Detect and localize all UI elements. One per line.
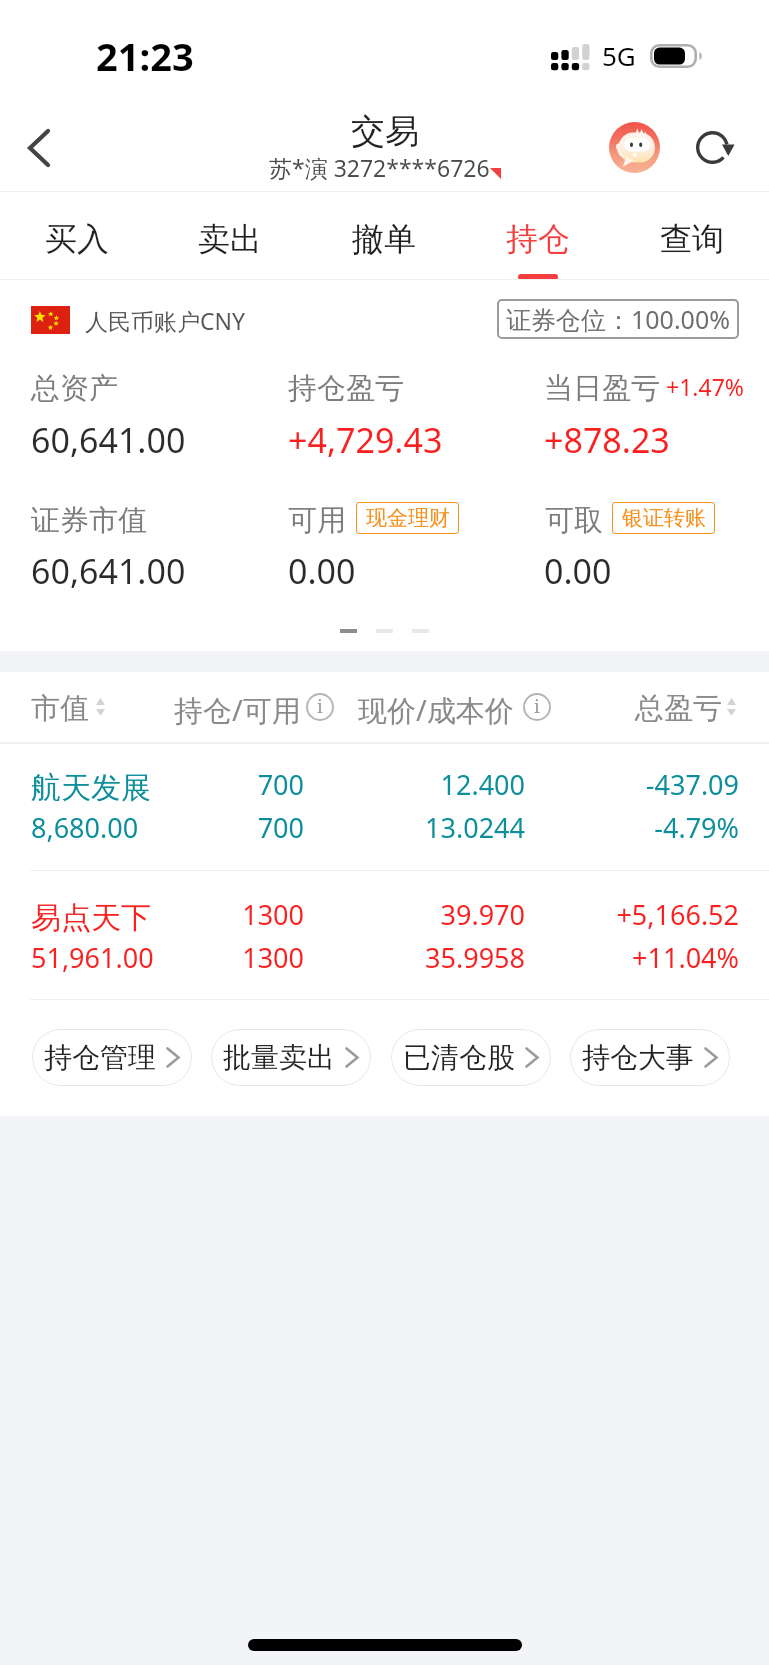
staticText: 51,961.00 <box>31 939 154 976</box>
staticText: 总盈亏 <box>635 690 722 727</box>
staticText: 市值 <box>31 690 89 727</box>
button[interactable]: 批量卖出 <box>211 1029 371 1086</box>
staticText: +878.23 <box>544 417 670 463</box>
button[interactable]: 查询 <box>615 192 769 280</box>
staticText: 700 <box>0 766 304 803</box>
staticText: 0.00 <box>288 548 356 594</box>
staticText: 8,680.00 <box>31 809 139 846</box>
staticText: 证券市值 <box>31 502 147 539</box>
staticText: 买入 <box>45 219 109 259</box>
staticText: i <box>317 694 323 719</box>
button[interactable]: 持仓管理 <box>32 1029 192 1086</box>
button[interactable]: 卖出 <box>153 192 307 280</box>
staticText: 交易 <box>351 110 419 153</box>
staticText: 13.0244 <box>0 809 525 846</box>
button[interactable]: 现金理财 <box>356 502 459 534</box>
button[interactable] <box>0 897 769 1019</box>
staticText: +1.47% <box>666 371 744 402</box>
staticText: 银证转账 <box>622 505 706 531</box>
staticText: 持仓管理 <box>44 1040 156 1075</box>
staticText: 现价/成本价 <box>358 690 514 730</box>
staticText: 700 <box>0 809 304 846</box>
staticText: 已清仓股 <box>403 1040 515 1075</box>
staticText: 可取 <box>545 502 603 539</box>
staticText: 总资产 <box>31 370 118 407</box>
staticText: 苏*演 3272****6726 <box>269 152 490 183</box>
button[interactable]: 已清仓股 <box>391 1029 551 1086</box>
staticText: 持仓盈亏 <box>288 370 404 407</box>
staticText: 60,641.00 <box>31 548 186 594</box>
staticText: 可用 <box>288 502 346 539</box>
staticText: 撤单 <box>352 219 416 259</box>
staticText: 航天发展 <box>31 769 151 807</box>
staticText: 0.00 <box>544 548 612 594</box>
button[interactable]: 撤单 <box>307 192 461 280</box>
button[interactable]: Refresh <box>684 118 740 174</box>
staticText: 1300 <box>0 939 304 976</box>
staticText: 21:23 <box>96 30 194 82</box>
staticText: 人民币账户CNY <box>85 305 246 336</box>
staticText: +5,166.52 <box>0 896 739 933</box>
staticText: 持仓大事 <box>582 1040 694 1075</box>
button[interactable]: 持仓大事 <box>570 1029 730 1086</box>
staticText: +11.04% <box>0 939 739 976</box>
staticText: +4,729.43 <box>288 417 443 463</box>
button[interactable]: Back <box>8 113 70 175</box>
button[interactable]: 证券仓位：100.00% <box>497 299 739 339</box>
staticText: 当日盈亏 <box>544 370 660 407</box>
staticText: 39.970 <box>0 896 525 933</box>
staticText: i <box>534 694 540 719</box>
button[interactable]: 银证转账 <box>612 502 715 534</box>
staticText: 1300 <box>0 896 304 933</box>
staticText: 5G <box>602 38 636 73</box>
button[interactable]: 买入 <box>0 192 153 280</box>
button[interactable]: 持仓 <box>461 192 615 280</box>
staticText: 12.400 <box>0 766 525 803</box>
button[interactable]: Customer service <box>609 122 660 173</box>
staticText: 现金理财 <box>366 505 450 531</box>
button[interactable] <box>0 767 769 889</box>
staticText: 易点天下 <box>31 899 151 937</box>
staticText: 查询 <box>660 219 724 259</box>
staticText: -437.09 <box>0 766 739 803</box>
staticText: 卖出 <box>198 219 262 259</box>
staticText: 持仓/可用 <box>174 690 301 730</box>
staticText: 持仓 <box>506 219 570 259</box>
staticText: 证券仓位：100.00% <box>506 302 730 336</box>
staticText: 60,641.00 <box>31 417 186 463</box>
staticText: -4.79% <box>0 809 739 846</box>
staticText: 批量卖出 <box>223 1040 335 1075</box>
staticText: 35.9958 <box>0 939 525 976</box>
